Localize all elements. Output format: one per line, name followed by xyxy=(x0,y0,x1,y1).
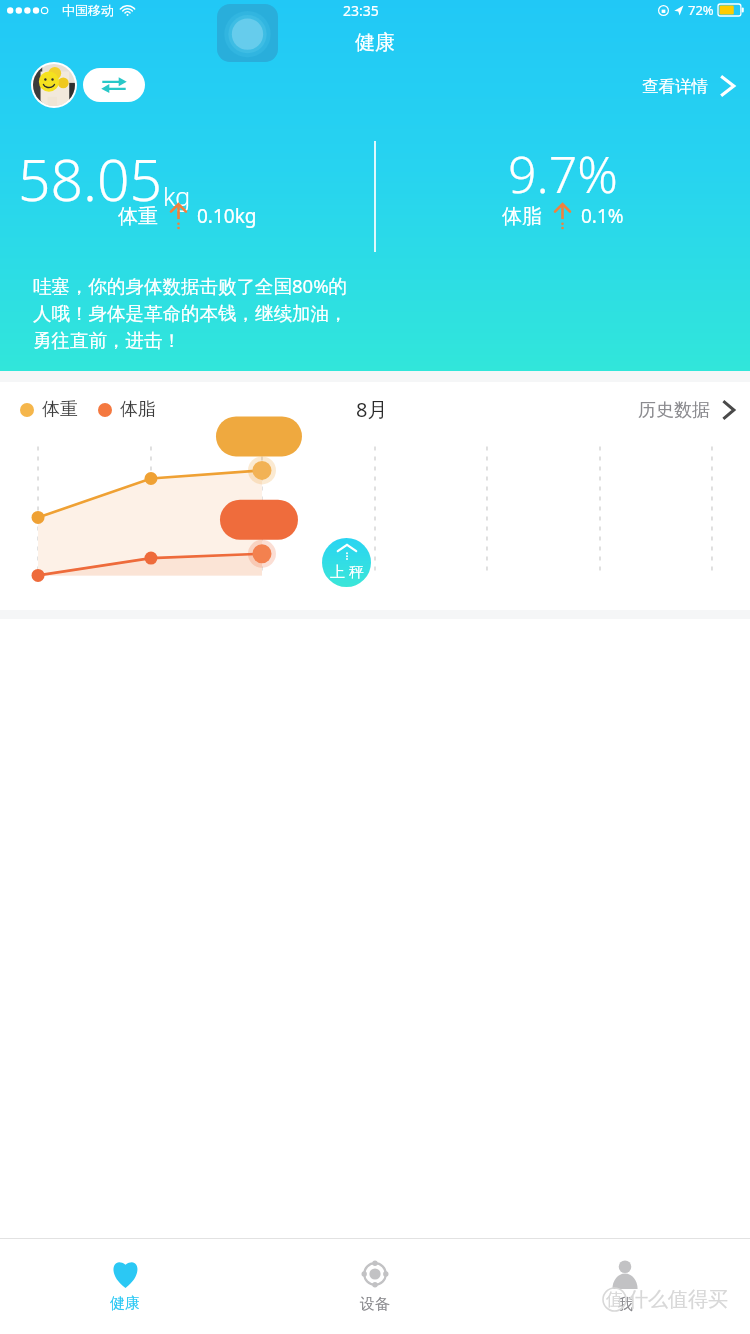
staticText: 健康 xyxy=(355,30,395,55)
staticText: 0.1% xyxy=(581,203,624,229)
staticText: 9.7% xyxy=(508,140,618,208)
staticText: 23:35 xyxy=(343,1,379,20)
staticText: 什么值得买 xyxy=(628,1287,728,1312)
staticText: kg xyxy=(163,179,191,213)
staticText: 体脂 xyxy=(120,398,156,421)
staticText: 58.05 xyxy=(18,140,163,218)
staticText: 查看详情 xyxy=(642,76,708,97)
staticText: 历史数据 xyxy=(638,399,710,422)
staticText: 哇塞，你的身体数据击败了全国80%的人哦！身体是革命的本钱，继续加油，勇往直前，… xyxy=(33,273,355,353)
button[interactable]: 上 秤 xyxy=(322,538,371,587)
button[interactable]: 历史数据 xyxy=(638,398,750,422)
button[interactable]: 查看详情 xyxy=(642,73,750,99)
staticText: 体重 xyxy=(42,398,78,421)
button[interactable]: 设备 xyxy=(250,1238,500,1334)
staticText: 健康 xyxy=(110,1294,140,1313)
staticText: 8月 xyxy=(356,396,388,423)
staticText: 上 秤 xyxy=(330,561,364,581)
button[interactable]: 健康 xyxy=(0,1238,250,1334)
staticText: 设备 xyxy=(360,1295,390,1314)
staticText: 中国移动 xyxy=(62,2,114,18)
staticText: 72% xyxy=(688,1,714,19)
button[interactable]: Switch user xyxy=(31,62,147,108)
staticText: 我 xyxy=(618,1295,633,1314)
button[interactable]: 我 xyxy=(500,1238,750,1334)
staticText: 体重 xyxy=(118,204,158,229)
staticText: 值 xyxy=(606,1289,623,1310)
staticText: 体脂 xyxy=(502,204,542,229)
staticText: 0.10kg xyxy=(197,203,257,229)
